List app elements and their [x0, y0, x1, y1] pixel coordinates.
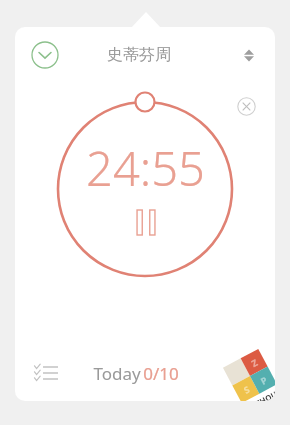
button[interactable]: Task list	[29, 356, 63, 390]
staticText: 0/10	[143, 362, 179, 385]
button[interactable]: Close	[231, 91, 261, 121]
button[interactable]: Today	[91, 362, 179, 385]
staticText: S	[241, 383, 251, 396]
staticText: 24:55	[86, 136, 205, 200]
button[interactable]: ZHOU logo	[221, 347, 275, 401]
button[interactable]: Reorder	[237, 43, 261, 67]
staticText: P	[258, 373, 269, 387]
staticText: Today	[91, 362, 143, 385]
staticText: ZHOU	[253, 388, 275, 401]
staticText: Z	[249, 356, 260, 369]
button[interactable]: Complete task	[29, 39, 61, 71]
staticText: 史蒂芬周	[107, 45, 171, 65]
button[interactable]: Pause timer	[46, 90, 244, 288]
button[interactable]: 史蒂芬周	[107, 45, 171, 65]
